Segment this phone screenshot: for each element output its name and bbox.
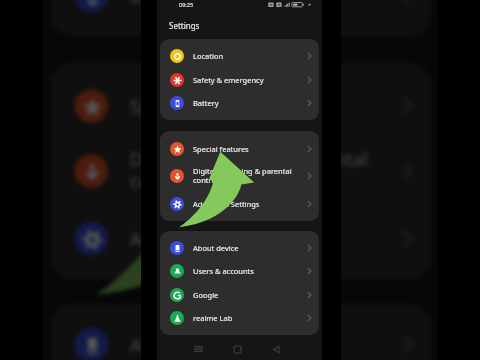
- button[interactable]: Users & accounts: [160, 264, 319, 278]
- staticText: realme Lab: [193, 313, 303, 323]
- button[interactable]: Additional Settings: [160, 197, 319, 211]
- button[interactable]: Back: [266, 338, 286, 360]
- button[interactable]: realme Lab: [160, 311, 319, 325]
- staticText: Additional Settings: [193, 199, 303, 209]
- staticText: Special features: [130, 94, 392, 118]
- staticText: Google: [193, 290, 303, 300]
- staticText: Additional Settings: [130, 227, 392, 251]
- staticText: 09:25: [179, 1, 194, 8]
- staticText: Users & accounts: [193, 266, 303, 276]
- staticText: Digital Wellbeing & parental controls: [193, 166, 303, 186]
- button[interactable]: Home: [227, 338, 247, 360]
- staticText: Battery: [130, 0, 392, 7]
- staticText: About device: [193, 243, 303, 253]
- button[interactable]: Google: [160, 288, 319, 302]
- button[interactable]: Safety & emergency: [160, 73, 319, 87]
- staticText: Location: [193, 51, 303, 61]
- staticText: Battery: [193, 98, 303, 108]
- staticText: About device: [130, 333, 392, 357]
- button[interactable]: Location: [160, 49, 319, 63]
- button[interactable]: Recent apps: [188, 338, 208, 360]
- button[interactable]: Battery: [160, 96, 319, 110]
- staticText: Special features: [193, 144, 303, 154]
- staticText: Settings: [169, 20, 200, 31]
- staticText: Digital Wellbeing & parental controls: [130, 147, 392, 195]
- staticText: Safety & emergency: [193, 75, 303, 85]
- button[interactable]: Digital Wellbeing & parental controls: [160, 166, 319, 186]
- button[interactable]: Special features: [160, 142, 319, 156]
- button[interactable]: About device: [160, 241, 319, 255]
